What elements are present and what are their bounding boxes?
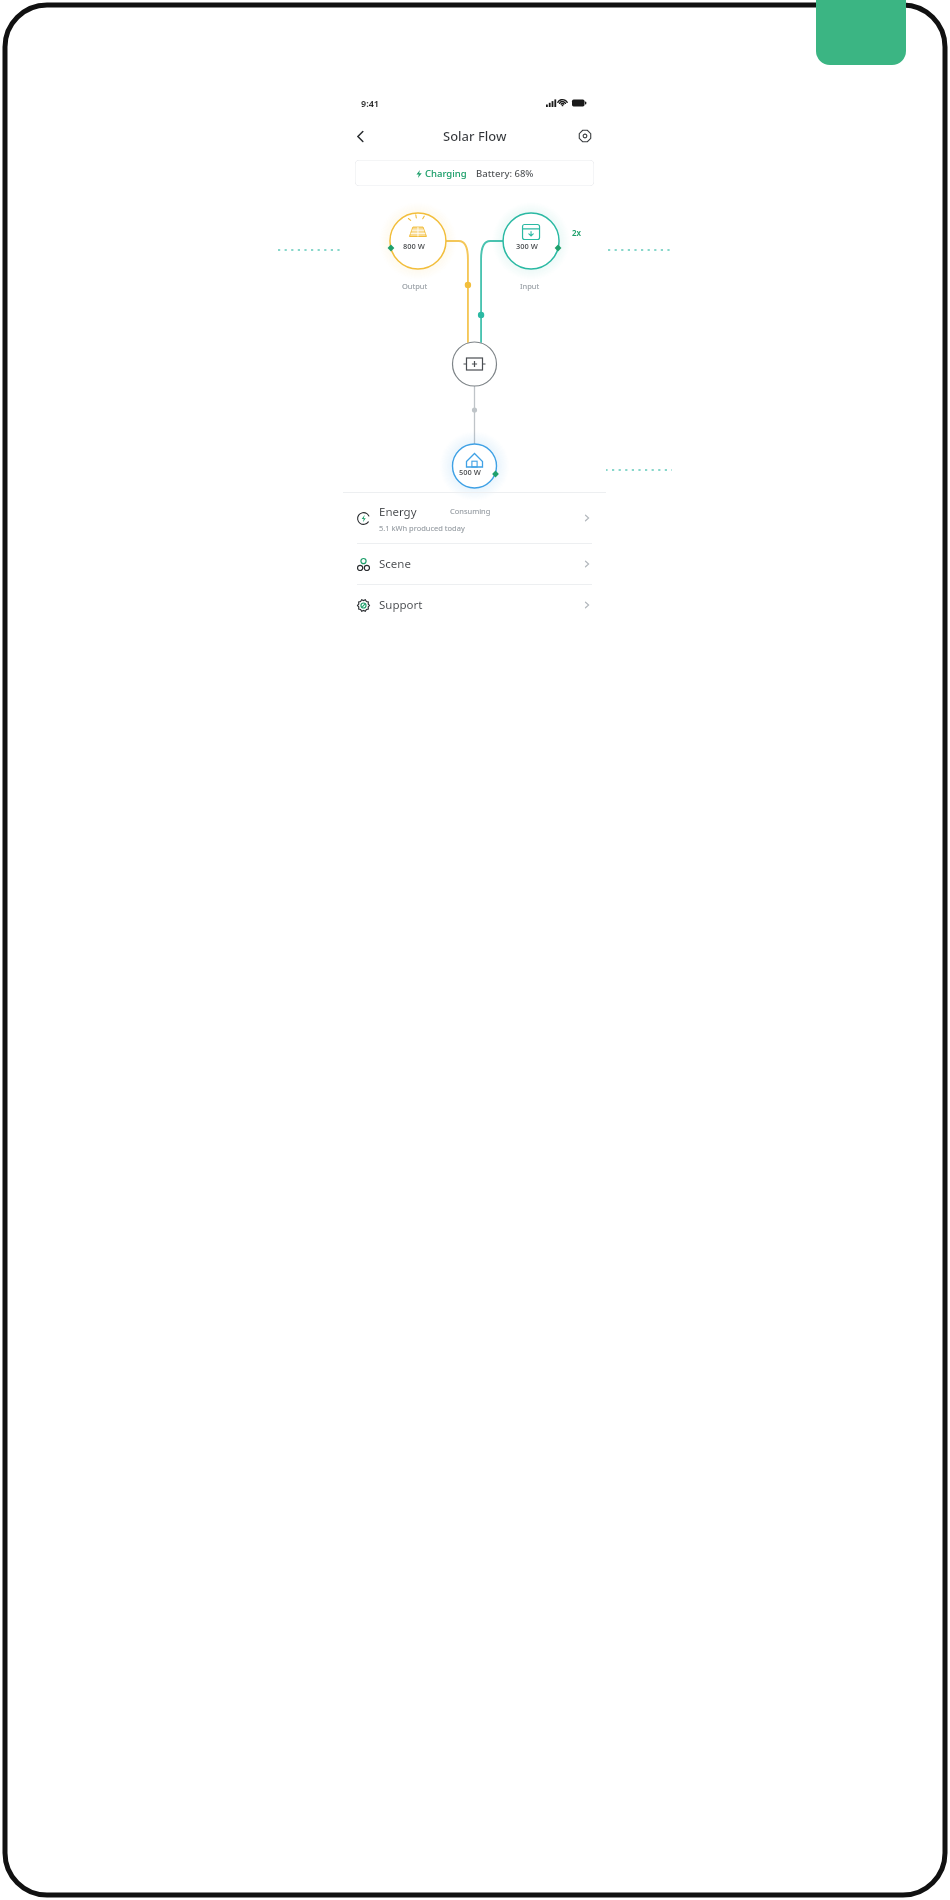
staticText: 9:41 bbox=[361, 97, 379, 109]
staticText: Energy bbox=[379, 504, 417, 520]
staticText: 2x bbox=[572, 227, 582, 238]
button[interactable]: Support bbox=[343, 585, 606, 625]
staticText: Consuming bbox=[450, 506, 491, 516]
staticText: Scene bbox=[379, 556, 411, 572]
button[interactable]: Device settings bbox=[572, 123, 598, 149]
button[interactable]: Back bbox=[343, 119, 377, 153]
staticText: Output bbox=[402, 281, 428, 291]
staticText: 5.1 kWh produced today bbox=[379, 523, 465, 533]
staticText: Support bbox=[379, 597, 423, 613]
staticText: 500 W bbox=[459, 467, 481, 477]
staticText: 800 W bbox=[403, 241, 425, 251]
staticText: Solar Flow bbox=[443, 127, 507, 145]
button[interactable]: Energy bbox=[343, 493, 606, 543]
staticText: Input bbox=[520, 281, 540, 291]
button[interactable]: Charging bbox=[355, 160, 594, 186]
staticText: 300 W bbox=[516, 241, 538, 251]
button[interactable]: Scene bbox=[343, 544, 606, 584]
staticText: Charging bbox=[425, 167, 467, 180]
staticText: Battery: 68% bbox=[476, 167, 534, 180]
